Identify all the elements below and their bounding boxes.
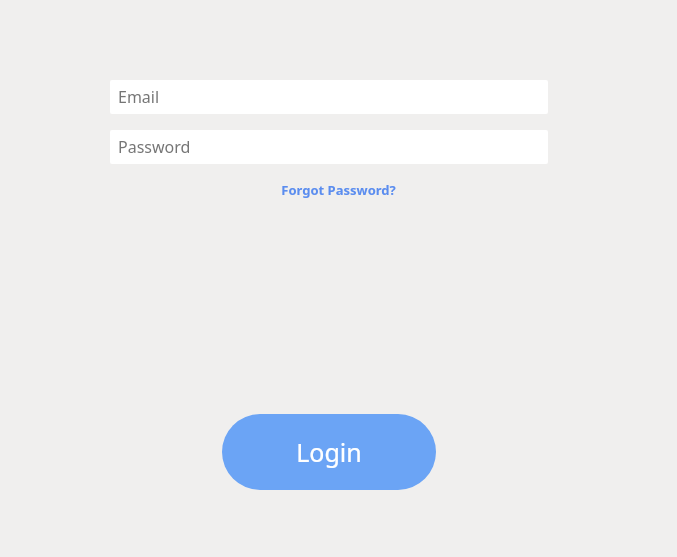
staticText: Password	[118, 136, 191, 158]
button[interactable]: Password	[110, 130, 548, 164]
staticText: Forgot Password?	[281, 181, 396, 199]
button[interactable]: Login	[222, 414, 436, 490]
button[interactable]: Email	[110, 80, 548, 114]
staticText: Login	[296, 435, 362, 469]
button[interactable]: Forgot Password?	[279, 180, 398, 200]
staticText: Email	[118, 86, 160, 108]
